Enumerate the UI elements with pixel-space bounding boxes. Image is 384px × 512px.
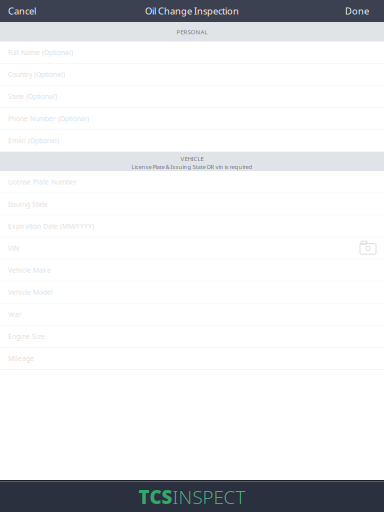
staticText: Vehicle Model [8, 288, 53, 297]
button[interactable]: Done [337, 0, 384, 22]
button[interactable]: Country (Optional) [0, 64, 384, 86]
staticText: Engine Size [8, 332, 45, 341]
staticText: License Plate Number [8, 177, 77, 186]
staticText: Done [345, 5, 369, 17]
button[interactable]: Expiration Date (MM/YYYY) [0, 215, 384, 237]
staticText: VEHICLE [180, 155, 203, 163]
staticText: VIN [8, 244, 19, 253]
staticText: INSPECT [172, 484, 245, 509]
staticText: PERSONAL [176, 28, 207, 36]
staticText: Expiration Date (MM/YYYY) [8, 222, 94, 231]
staticText: License Plate & Issuing State OR vin is … [131, 163, 252, 171]
staticText: Cancel [8, 5, 36, 17]
button[interactable]: Full Name (Optional) [0, 42, 384, 64]
button[interactable]: Cancel [0, 0, 44, 22]
button[interactable]: Email (Optional) [0, 130, 384, 152]
staticText: Vehicle Make [8, 266, 51, 275]
button[interactable]: VIN [0, 237, 384, 260]
staticText: State (Optional) [8, 92, 57, 101]
staticText: Phone Number (Optional) [8, 114, 89, 123]
staticText: Country (Optional) [8, 70, 65, 79]
staticText: TCS [138, 484, 172, 509]
staticText: Full Name (Optional) [8, 48, 73, 57]
staticText: Mileage [8, 354, 34, 363]
staticText: Oil Change Inspection [145, 5, 239, 17]
button[interactable]: State (Optional) [0, 86, 384, 108]
staticText: Year [8, 310, 22, 319]
staticText: Issuing State [8, 199, 48, 209]
staticText: Email (Optional) [8, 136, 59, 145]
button[interactable]: Phone Number (Optional) [0, 108, 384, 130]
